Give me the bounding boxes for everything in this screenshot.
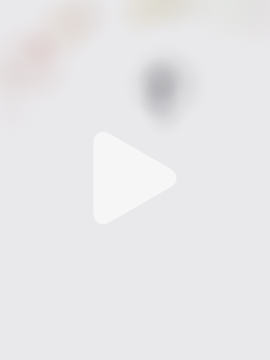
button[interactable]: Play video	[93, 124, 186, 231]
